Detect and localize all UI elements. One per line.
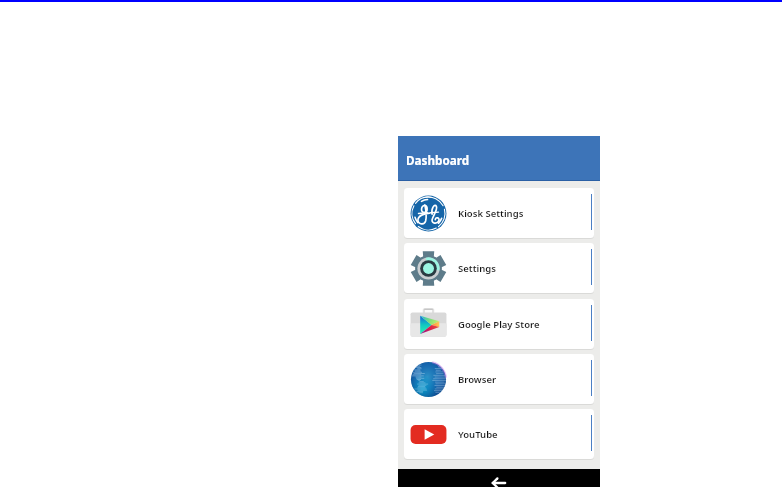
button[interactable]: Kiosk Settings (404, 188, 594, 238)
button[interactable]: Back (489, 469, 509, 487)
staticText: Kiosk Settings (458, 207, 524, 220)
staticText: Dashboard (406, 152, 470, 168)
staticText: Browser (458, 373, 497, 386)
staticText: YouTube (458, 428, 498, 441)
staticText: Settings (458, 262, 496, 275)
button[interactable]: Settings (404, 243, 594, 293)
button[interactable]: YouTube (404, 409, 594, 459)
button[interactable]: Dashboard (398, 136, 600, 181)
button[interactable]: Google Play Store (404, 299, 594, 349)
button[interactable]: Browser (404, 354, 594, 404)
staticText: Google Play Store (458, 318, 540, 331)
